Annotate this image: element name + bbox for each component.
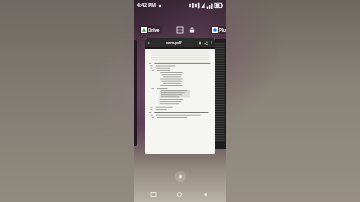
staticText: sem.pdf bbox=[166, 40, 182, 45]
button[interactable] bbox=[208, 39, 226, 149]
button[interactable]: Drive bbox=[139, 26, 162, 34]
button[interactable]: Plu bbox=[210, 26, 226, 34]
button[interactable]: Back bbox=[200, 189, 211, 200]
button[interactable]: sem.pdf bbox=[145, 38, 215, 154]
button[interactable]: Recents bbox=[148, 189, 159, 200]
staticText: Plu bbox=[219, 27, 226, 33]
button[interactable]: Split screen bbox=[175, 25, 184, 34]
button[interactable]: Home bbox=[174, 189, 185, 200]
staticText: Drive bbox=[148, 27, 160, 33]
button[interactable]: Pin app bbox=[187, 25, 196, 34]
button[interactable]: Clear all bbox=[175, 171, 186, 182]
staticText: 4:42 PM bbox=[137, 2, 156, 9]
